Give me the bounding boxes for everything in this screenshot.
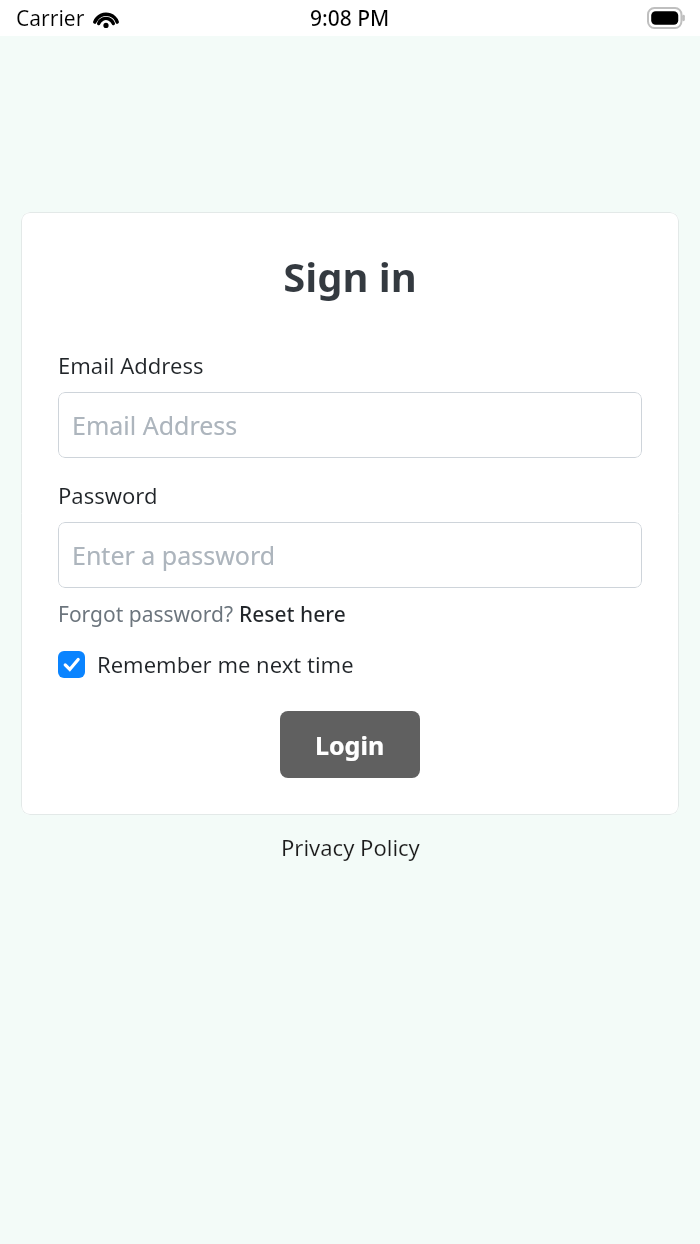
staticText: Remember me next time [97, 649, 354, 679]
staticText: Email Address [58, 350, 204, 380]
button[interactable]: Reset here [239, 600, 346, 629]
button[interactable]: Login [280, 711, 420, 778]
button[interactable]: Privacy Policy [0, 832, 700, 862]
staticText: Email Address [72, 408, 238, 442]
button[interactable]: Enter a password [58, 522, 642, 588]
staticText: Enter a password [72, 538, 276, 572]
staticText: Forgot password? [58, 600, 239, 629]
staticText: 9:08 PM [310, 4, 390, 33]
staticText: Password [58, 480, 158, 510]
staticText: Login [315, 728, 385, 762]
staticText: Privacy Policy [281, 832, 420, 862]
button[interactable]: Email Address [58, 392, 642, 458]
staticText: Sign in [58, 249, 642, 303]
staticText: Reset here [239, 600, 346, 629]
button[interactable]: Remember me next time [58, 649, 354, 679]
staticText: Carrier [16, 4, 85, 33]
